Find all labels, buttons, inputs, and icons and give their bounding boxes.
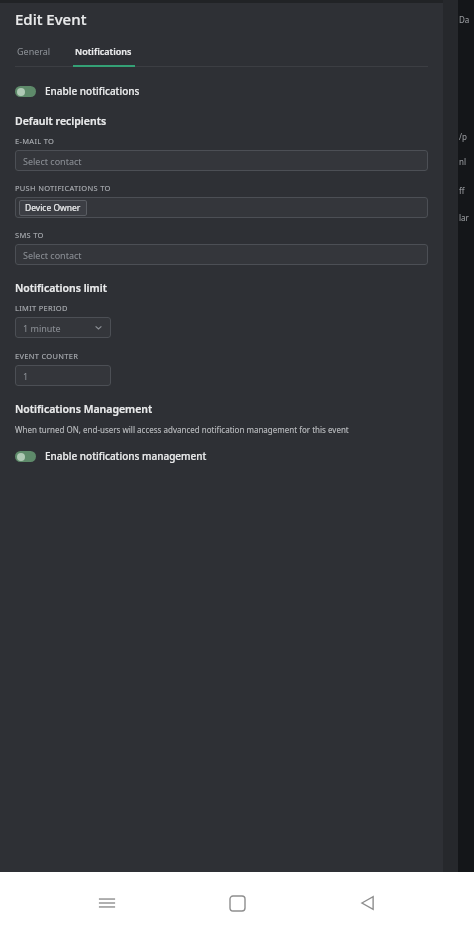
staticText: E-MAIL TO [15,136,55,146]
button[interactable]: Enable notifications [15,80,428,102]
button[interactable]: Select contact [15,244,428,265]
button[interactable]: Notifications [73,41,135,67]
staticText: Da [459,14,470,25]
staticText: SMS TO [15,230,44,240]
staticText: LIMIT PERIOD [15,303,68,313]
button[interactable]: Home [213,879,261,927]
staticText: Notifications [75,45,132,57]
button[interactable]: Back [344,879,392,927]
button[interactable]: Enable notifications management [15,445,428,467]
button[interactable]: Select contact [15,150,428,171]
staticText: Default recipients [15,114,107,128]
staticText: PUSH NOTIFICATIONS TO [15,183,111,193]
staticText: lar [459,212,469,223]
staticText: Notifications limit [15,281,107,295]
button[interactable]: 1 minute [15,317,111,338]
staticText: 1 minute [23,322,61,334]
staticText: 1 [23,370,29,382]
staticText: EVENT COUNTER [15,351,79,361]
staticText: General [17,45,51,57]
staticText: When turned ON, end-users will access ad… [15,424,349,435]
staticText: /p [459,131,467,142]
staticText: Device Owner [25,202,81,214]
staticText: Select contact [23,155,82,167]
staticText: nl [459,156,467,167]
staticText: Enable notifications management [45,449,207,463]
button[interactable]: Device Owner [15,197,428,218]
staticText: Notifications Management [15,402,153,416]
staticText: Enable notifications [45,84,140,98]
button[interactable]: Recent apps [83,879,131,927]
staticText: Edit Event [15,9,87,29]
staticText: ff [459,185,465,196]
button[interactable]: General [15,41,53,67]
staticText: Select contact [23,249,82,261]
button[interactable]: 1 [15,365,111,386]
